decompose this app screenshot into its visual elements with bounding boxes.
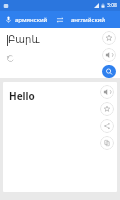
button[interactable]: Listen (100, 85, 114, 99)
button[interactable]: Favorite (102, 31, 116, 45)
staticText: армянский (15, 16, 48, 24)
staticText: Hello (9, 89, 35, 103)
button[interactable]: армянский (0, 11, 53, 28)
button[interactable]: английский (67, 11, 120, 28)
staticText: Բարև (8, 34, 40, 46)
button[interactable]: Listen (102, 48, 116, 62)
button[interactable]: Undo (4, 52, 16, 64)
button[interactable]: Translate (102, 65, 116, 78)
staticText: английский (71, 16, 106, 24)
button[interactable]: Swap languages (53, 13, 67, 27)
staticText: 3:08 (107, 2, 117, 9)
button[interactable]: Hello (3, 82, 117, 192)
button[interactable]: Share (100, 119, 114, 133)
button[interactable]: Favorite (100, 102, 114, 116)
button[interactable]: Copy (100, 136, 114, 150)
